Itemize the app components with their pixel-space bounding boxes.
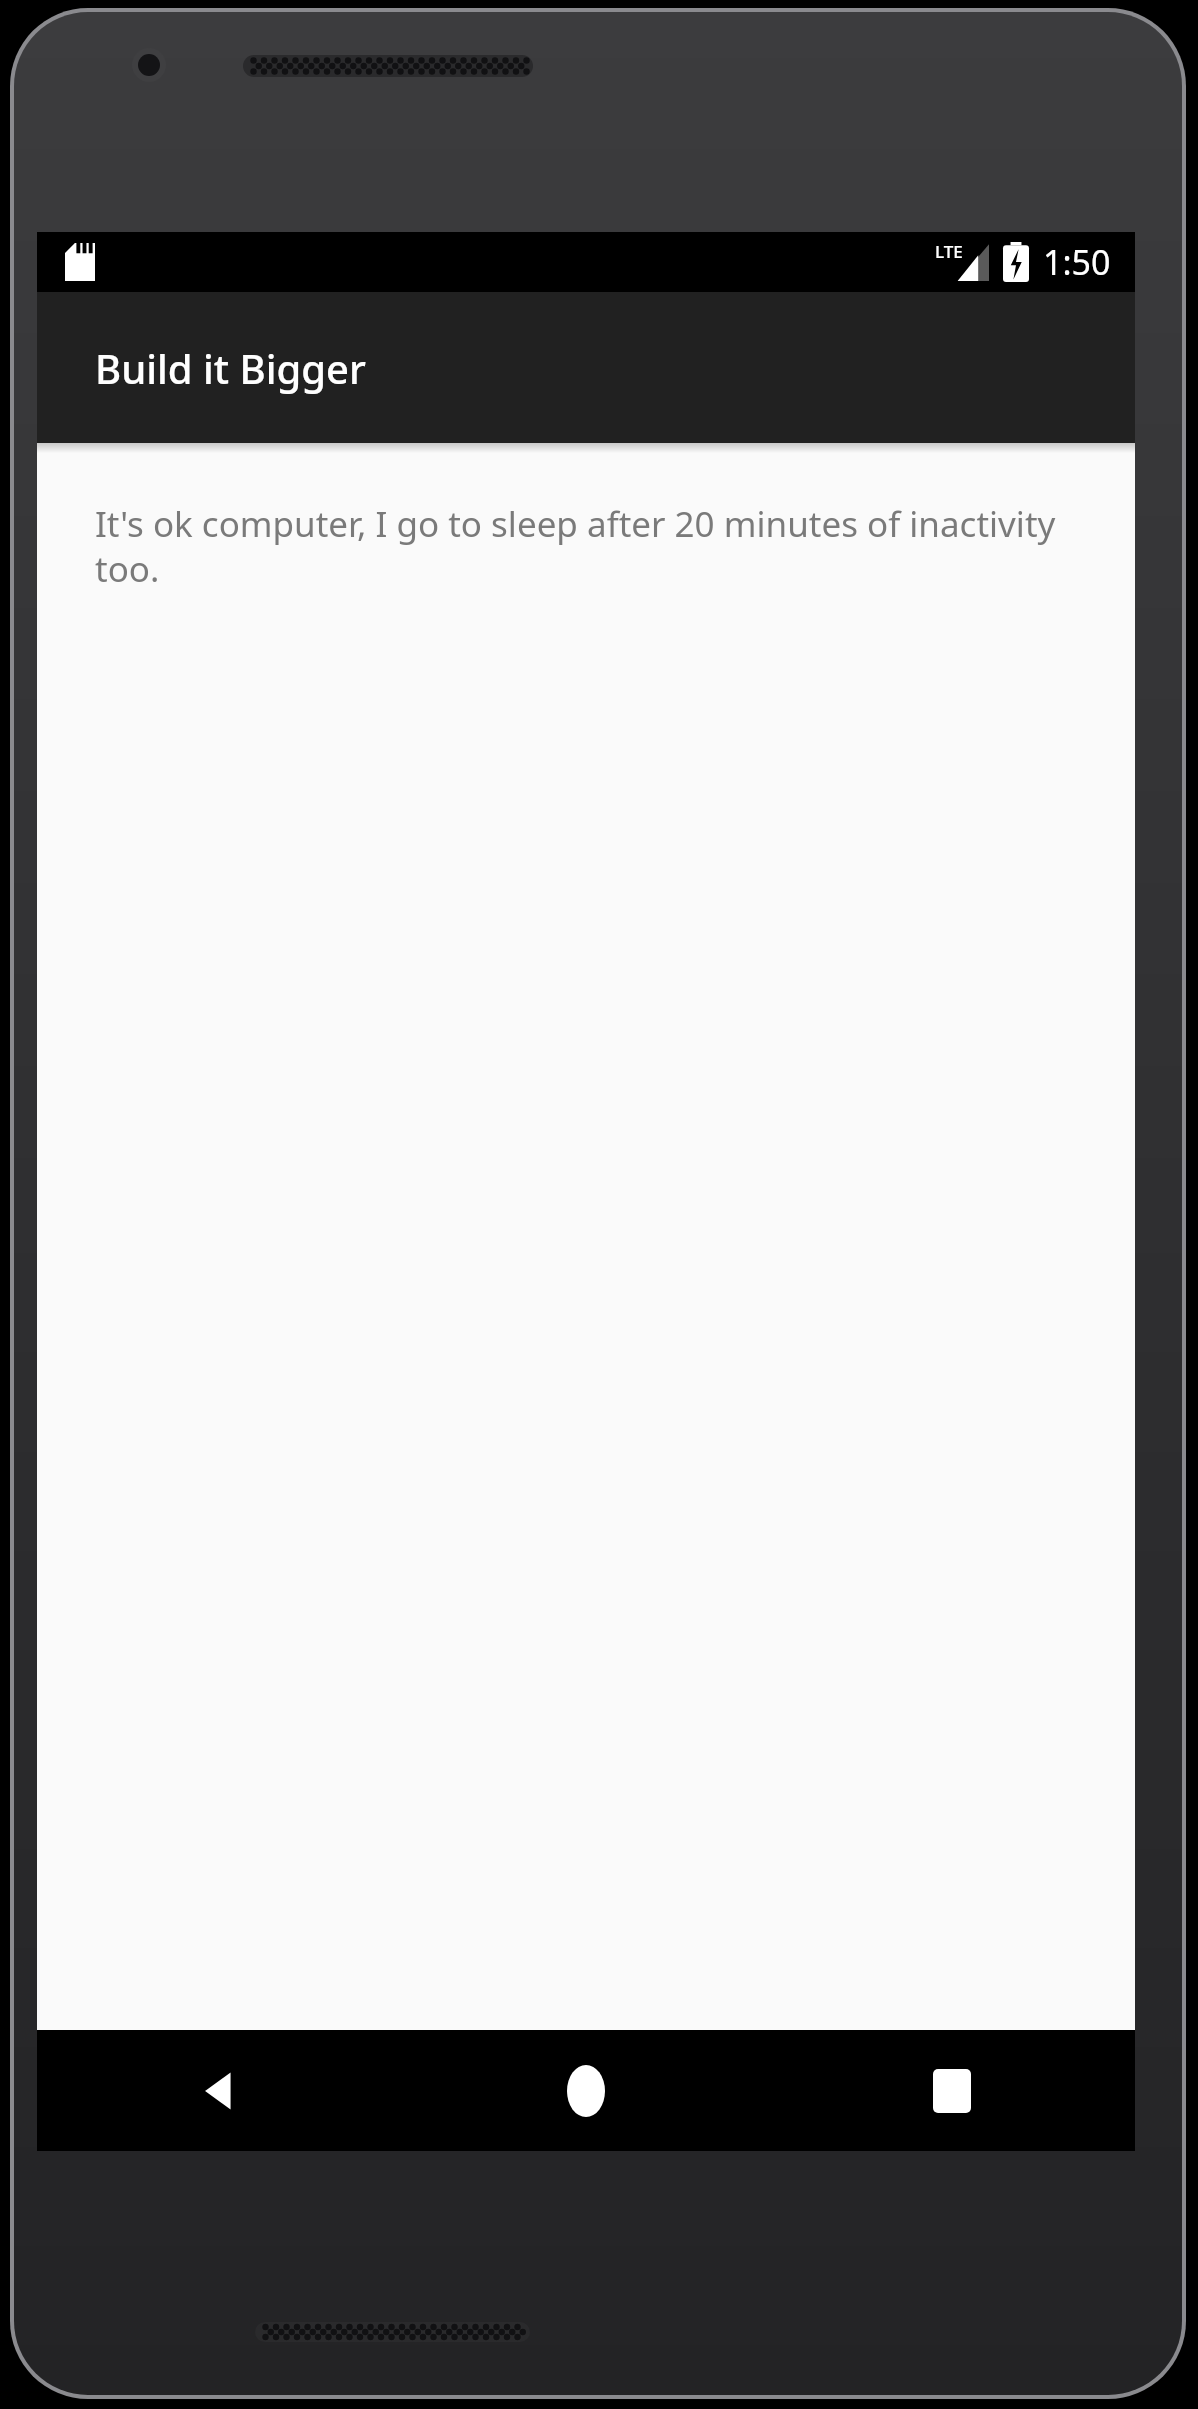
staticText: Build it Bigger	[95, 341, 366, 395]
staticText: LTE	[935, 240, 963, 263]
staticText: 1:50	[1043, 239, 1111, 285]
button[interactable]: Recent apps	[769, 2030, 1135, 2151]
staticText: It's ok computer, I go to sleep after 20…	[95, 500, 1085, 593]
button[interactable]: Home	[403, 2030, 769, 2151]
button[interactable]: Back	[37, 2030, 403, 2151]
